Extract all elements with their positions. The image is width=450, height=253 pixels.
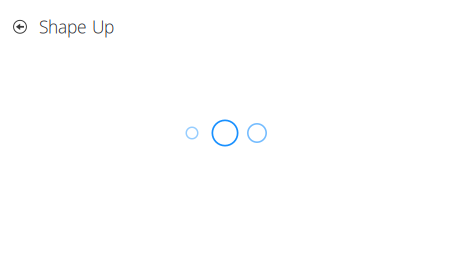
staticText: Shape Up	[39, 15, 114, 39]
button[interactable]: Back to Shape Up	[0, 0, 124, 47]
